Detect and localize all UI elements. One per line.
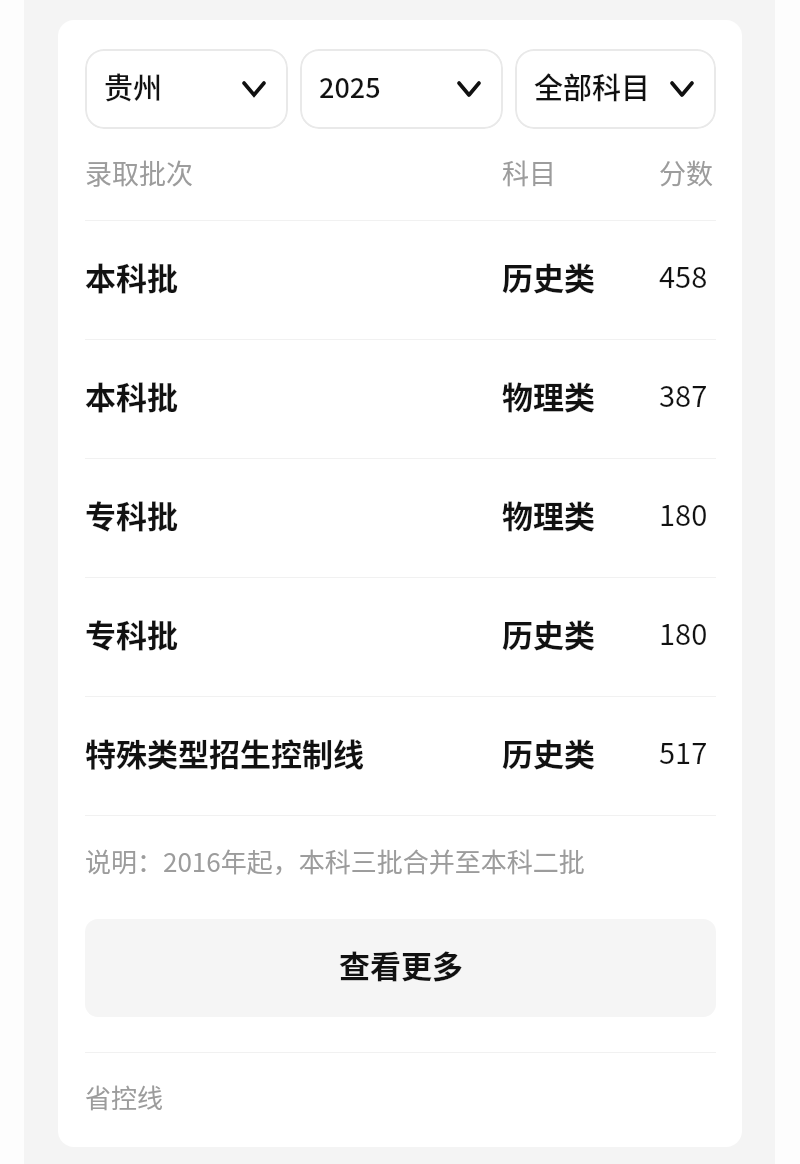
button[interactable]: 筛选 2025 bbox=[300, 49, 503, 129]
staticText: 本科批 bbox=[85, 254, 178, 299]
staticText: 历史类 bbox=[502, 730, 595, 775]
staticText: 录取批次 bbox=[85, 153, 193, 192]
button[interactable]: 本科批 bbox=[85, 221, 716, 339]
staticText: 贵州 bbox=[104, 65, 163, 107]
staticText: 说明：2016年起，本科三批合并至本科二批 bbox=[85, 842, 585, 880]
button[interactable]: 专科批 bbox=[85, 459, 716, 577]
staticText: 517 bbox=[659, 730, 708, 772]
staticText: 特殊类型招生控制线 bbox=[85, 730, 364, 775]
staticText: 分数 bbox=[659, 153, 713, 192]
staticText: 180 bbox=[659, 611, 708, 653]
staticText: 专科批 bbox=[85, 611, 178, 656]
staticText: 历史类 bbox=[502, 254, 595, 299]
staticText: 历史类 bbox=[502, 611, 595, 656]
button[interactable]: 专科批 bbox=[85, 578, 716, 696]
staticText: 458 bbox=[659, 254, 708, 296]
staticText: 387 bbox=[659, 373, 708, 415]
button[interactable]: 特殊类型招生控制线 bbox=[85, 697, 716, 815]
button[interactable]: 查看更多 bbox=[85, 919, 716, 1017]
staticText: 查看更多 bbox=[339, 942, 463, 987]
staticText: 全部科目 bbox=[534, 65, 651, 107]
button[interactable]: 本科批 bbox=[85, 340, 716, 458]
staticText: 2025 bbox=[319, 67, 381, 106]
staticText: 科目 bbox=[502, 153, 556, 192]
staticText: 专科批 bbox=[85, 492, 178, 537]
staticText: 本科批 bbox=[85, 373, 178, 418]
button[interactable]: 筛选 全部科目 bbox=[515, 49, 716, 129]
staticText: 180 bbox=[659, 492, 708, 534]
staticText: 省控线 bbox=[85, 1078, 164, 1116]
staticText: 物理类 bbox=[502, 373, 595, 418]
button[interactable]: 筛选 贵州 bbox=[85, 49, 288, 129]
staticText: 物理类 bbox=[502, 492, 595, 537]
